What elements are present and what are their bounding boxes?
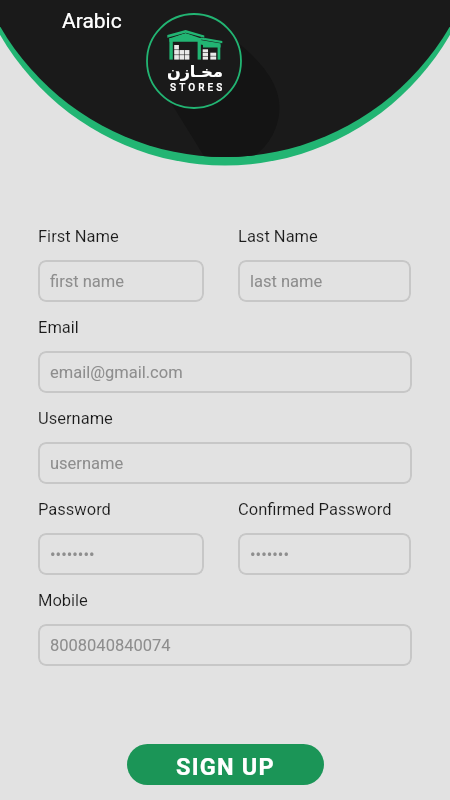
staticText: Arabic [62, 9, 122, 34]
staticText: First Name [38, 227, 119, 246]
staticText: ••••••• [250, 545, 289, 564]
staticText: first name [50, 272, 125, 291]
staticText: مخـازن [167, 62, 223, 81]
button[interactable]: 8008040840074 [38, 624, 412, 666]
staticText: Last Name [238, 227, 318, 246]
staticText: SIGN UP [176, 753, 275, 781]
staticText: •••••••• [50, 545, 95, 564]
staticText: last name [250, 272, 323, 291]
button[interactable]: last name [238, 260, 411, 302]
staticText: Confirmed Password [238, 500, 392, 519]
staticText: username [50, 454, 124, 473]
staticText: Password [38, 500, 111, 519]
staticText: email@gmail.com [50, 363, 183, 382]
button[interactable]: Arabic [62, 9, 122, 34]
staticText: STORES [170, 82, 226, 94]
staticText: Email [38, 318, 79, 337]
button[interactable]: SIGN UP [127, 744, 324, 785]
button[interactable]: ••••••• [238, 533, 411, 575]
button[interactable]: email@gmail.com [38, 351, 412, 393]
staticText: Username [38, 409, 113, 428]
button[interactable]: •••••••• [38, 533, 204, 575]
button[interactable]: username [38, 442, 412, 484]
button[interactable]: first name [38, 260, 204, 302]
staticText: Mobile [38, 591, 88, 610]
staticText: 8008040840074 [50, 636, 171, 655]
